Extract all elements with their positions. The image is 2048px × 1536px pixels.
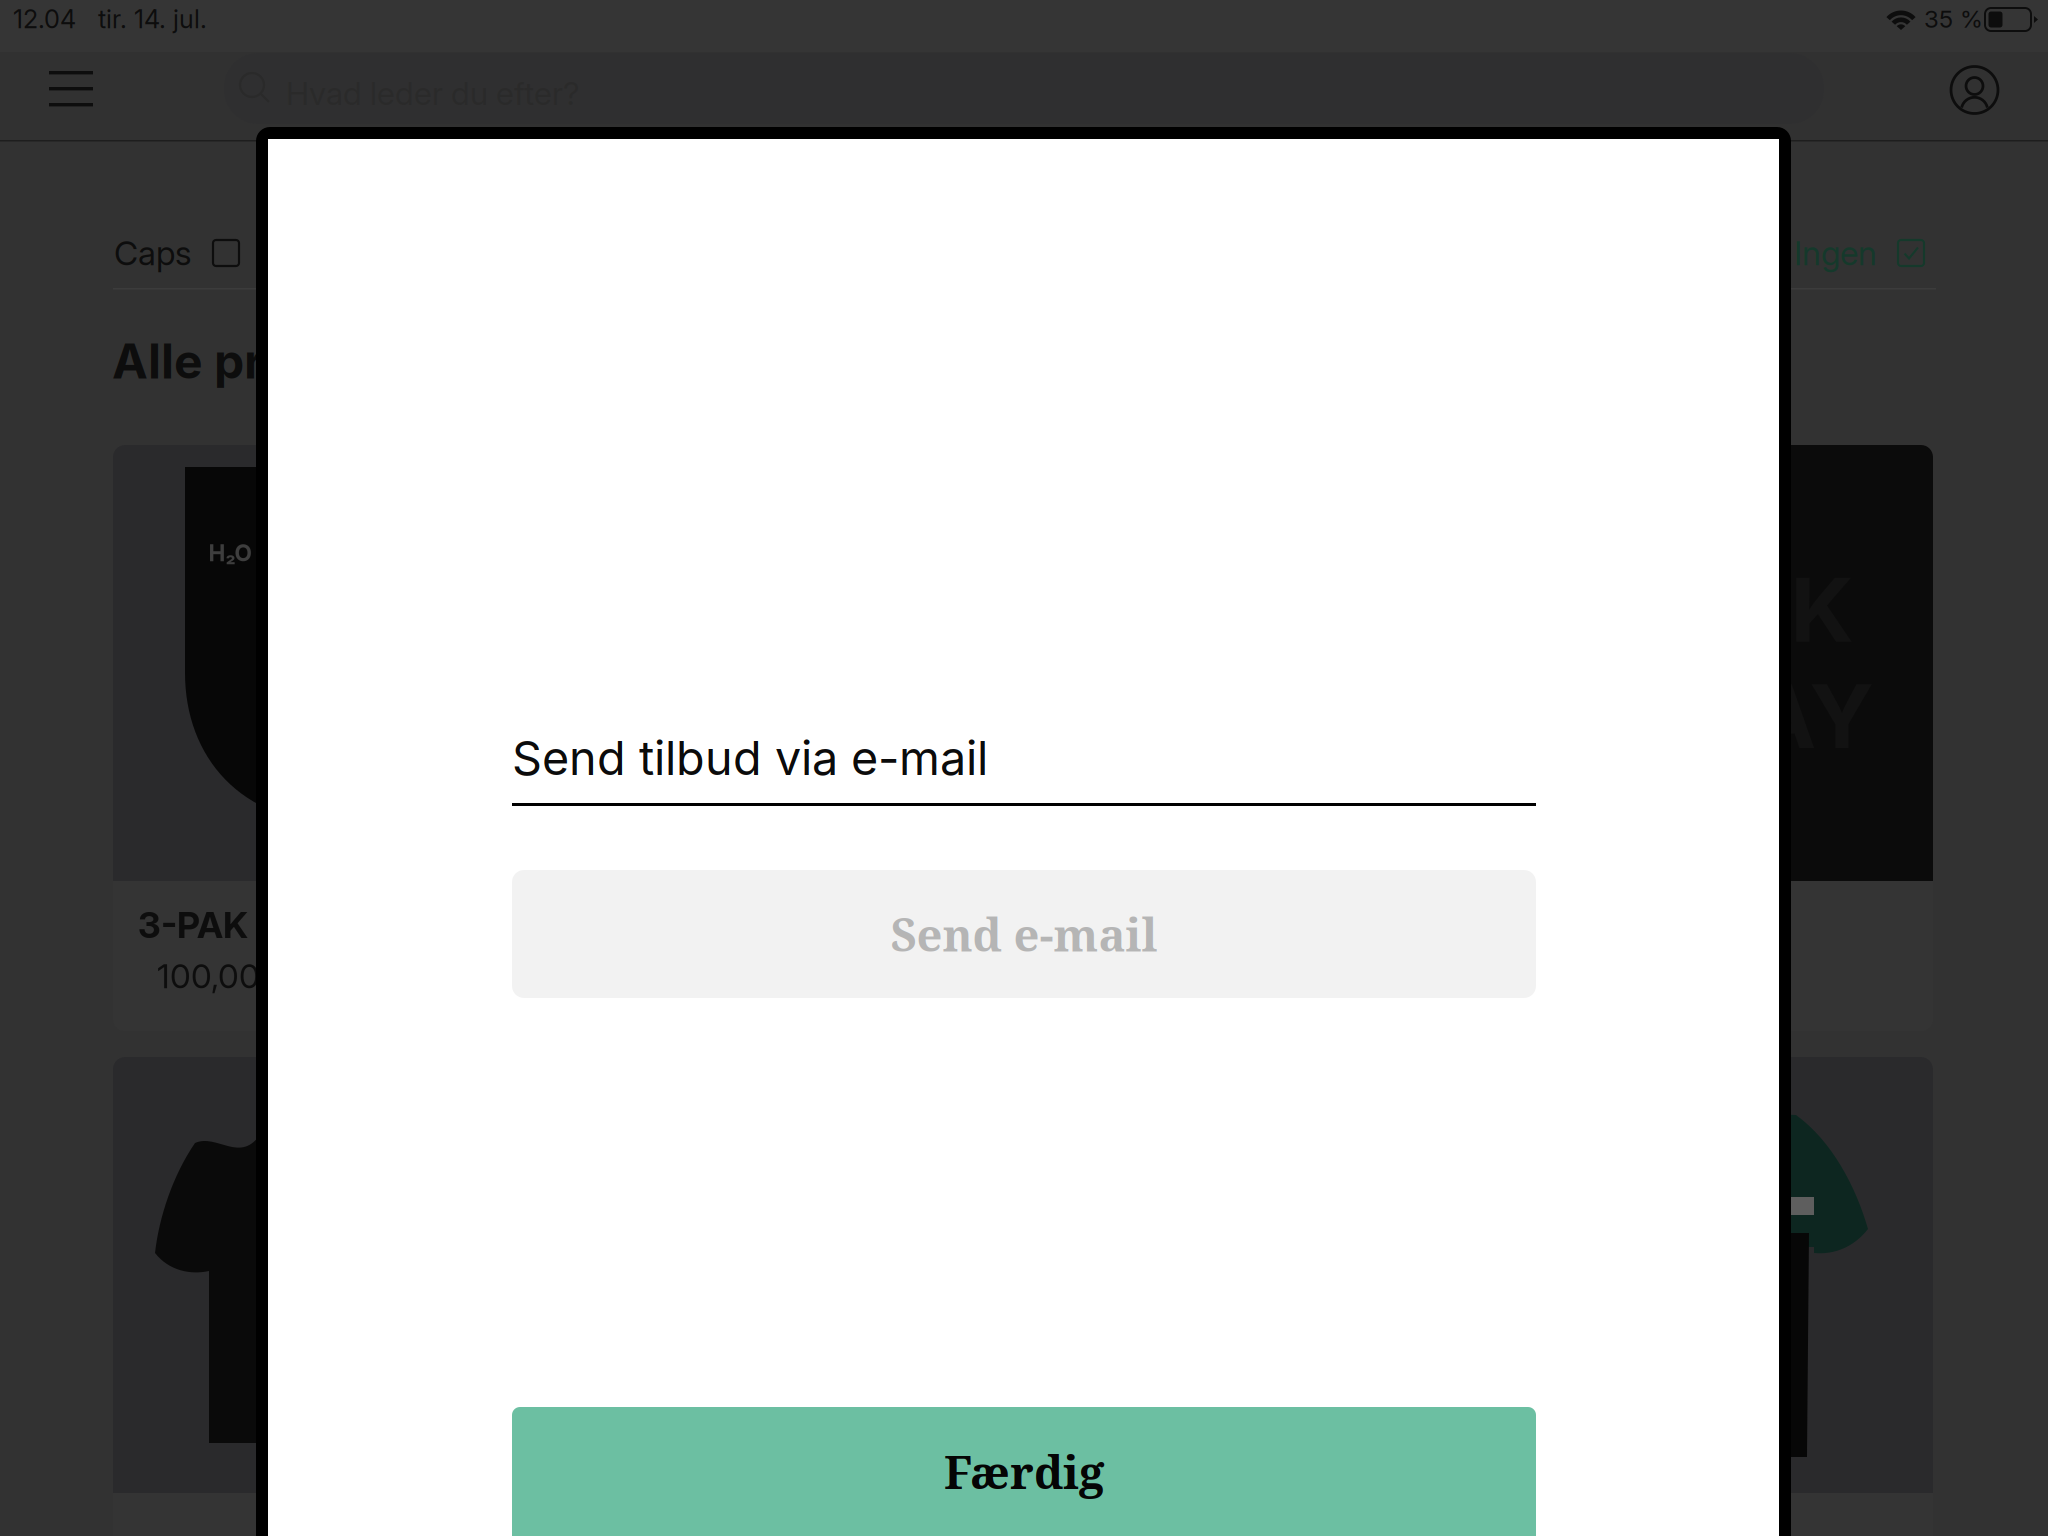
staticText: Færdig [944, 1441, 1104, 1502]
staticText: 35 % [1924, 4, 1983, 33]
button[interactable]: Menu [49, 64, 95, 112]
button[interactable]: Account [1951, 66, 1998, 113]
staticText: CREW HOODIE [1127, 903, 1379, 947]
button[interactable]: WINDBREAKER [1035, 1057, 1472, 1536]
button[interactable]: BLACK FRIDAY [1496, 445, 1933, 1031]
button[interactable]: SWEAT SHORTS I BLÅ [574, 1057, 1011, 1536]
staticText: Ingen [1794, 233, 1877, 273]
staticText: 3-PAK SOKKER I SORT [138, 903, 525, 947]
button[interactable]: H₂O [113, 445, 550, 1031]
button[interactable]: Send e-mail [512, 870, 1536, 998]
button[interactable]: Ingen [1794, 238, 1924, 268]
button[interactable]: Caps [114, 238, 239, 268]
staticText: Send tilbud via e-mail [512, 730, 988, 786]
button[interactable]: Færdig [512, 1407, 1536, 1536]
staticText: 100,00 DKK SPAR 50% [157, 956, 506, 996]
button[interactable]: CREW HOODIE [1035, 445, 1472, 1031]
staticText: BASIC TEE I HVID [644, 903, 940, 947]
button[interactable]: TEE [1496, 1057, 1933, 1536]
staticText: BLACK FRIDAY [1555, 556, 1873, 769]
button[interactable]: T-SHIRT [113, 1057, 550, 1536]
staticText: Alle produkter [112, 332, 445, 390]
staticText: 12.04 [13, 4, 76, 34]
staticText: Send e-mail [890, 903, 1157, 965]
button[interactable]: BASIC TEE I HVID [574, 445, 1011, 1031]
staticText: T-SHIRT [260, 1515, 403, 1536]
staticText: H₂O [208, 539, 251, 567]
staticText: Caps [114, 233, 192, 273]
staticText: tir. 14. jul. [98, 4, 207, 34]
